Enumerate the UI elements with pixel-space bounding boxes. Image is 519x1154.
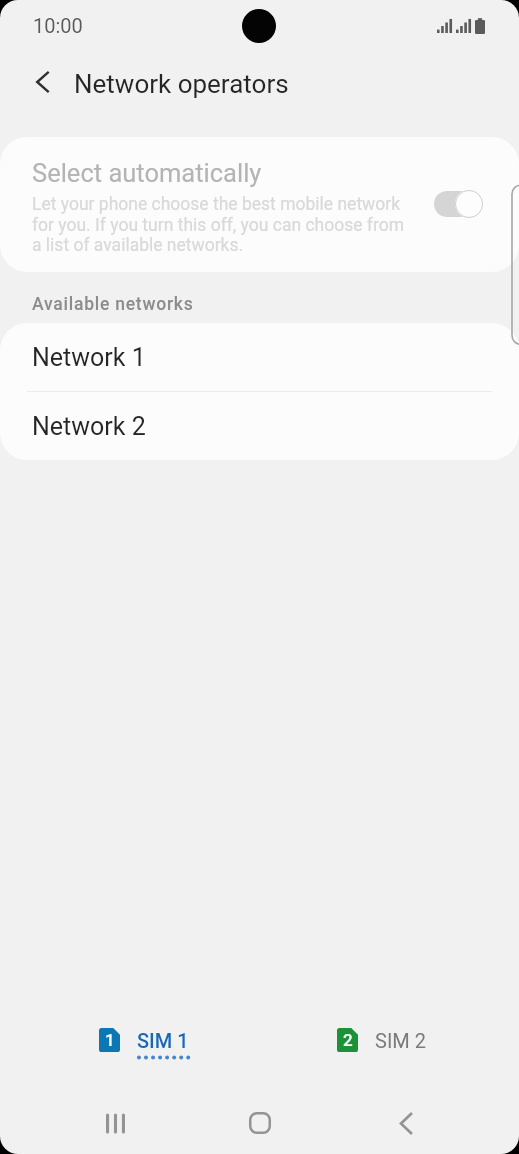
- staticText: Select automatically: [32, 158, 262, 188]
- button[interactable]: Select automatically: [0, 137, 519, 272]
- staticText: SIM 2: [375, 1029, 426, 1052]
- staticText: Network operators: [74, 69, 289, 99]
- button[interactable]: Recent apps: [92, 1100, 138, 1146]
- staticText: 2: [343, 1030, 353, 1050]
- button[interactable]: Home: [237, 1100, 283, 1146]
- button[interactable]: 1: [89, 1021, 199, 1068]
- button[interactable]: Back: [382, 1100, 428, 1146]
- staticText: Available networks: [32, 294, 194, 315]
- button[interactable]: Navigate up: [20, 60, 64, 104]
- staticText: 1: [105, 1030, 115, 1050]
- button[interactable]: 2: [327, 1021, 436, 1061]
- button[interactable]: Network 1: [0, 323, 519, 391]
- staticText: 10:00: [33, 14, 83, 37]
- staticText: Let your phone choose the best mobile ne…: [32, 194, 417, 256]
- staticText: SIM 1: [137, 1029, 189, 1052]
- button[interactable]: Select automatically: [434, 191, 482, 217]
- staticText: Network 2: [32, 412, 146, 441]
- button[interactable]: Network 2: [0, 392, 519, 460]
- staticText: Network 1: [32, 343, 146, 372]
